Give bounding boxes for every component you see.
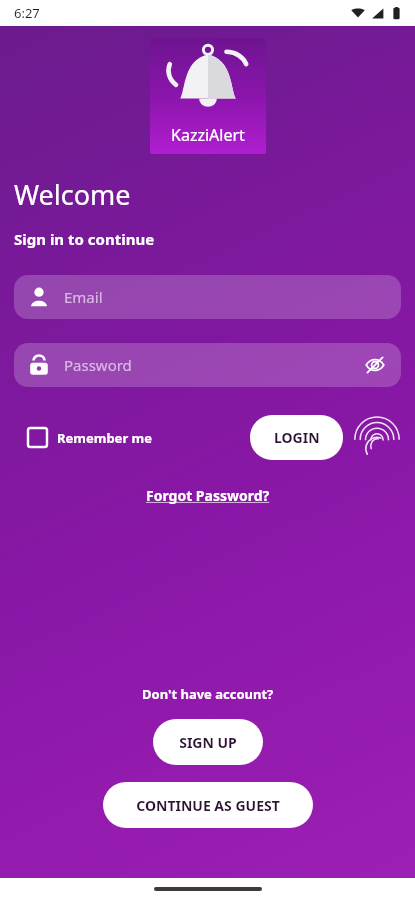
button[interactable]: SIGN UP <box>153 719 263 765</box>
staticText: Email <box>64 287 387 307</box>
staticText: Forgot Password? <box>146 486 270 505</box>
staticText: Welcome <box>14 176 131 213</box>
staticText: 6:27 <box>14 4 40 22</box>
staticText: Sign in to continue <box>14 229 155 249</box>
button[interactable]: Email <box>14 275 401 319</box>
button[interactable]: CONTINUE AS GUEST <box>103 782 313 828</box>
button[interactable]: Remember me <box>28 422 153 453</box>
staticText: LOGIN <box>274 428 320 447</box>
button[interactable]: LOGIN <box>250 415 343 460</box>
button[interactable]: Forgot Password? <box>138 482 278 509</box>
button[interactable]: Fingerprint login <box>359 420 395 456</box>
staticText: SIGN UP <box>179 733 237 752</box>
button[interactable]: Password <box>14 343 401 387</box>
staticText: Remember me <box>57 429 153 447</box>
button[interactable]: Show password <box>363 353 387 377</box>
staticText: KazziAlert <box>171 124 245 146</box>
staticText: Password <box>64 355 363 375</box>
staticText: Don't have account? <box>142 685 274 703</box>
staticText: CONTINUE AS GUEST <box>136 796 280 815</box>
